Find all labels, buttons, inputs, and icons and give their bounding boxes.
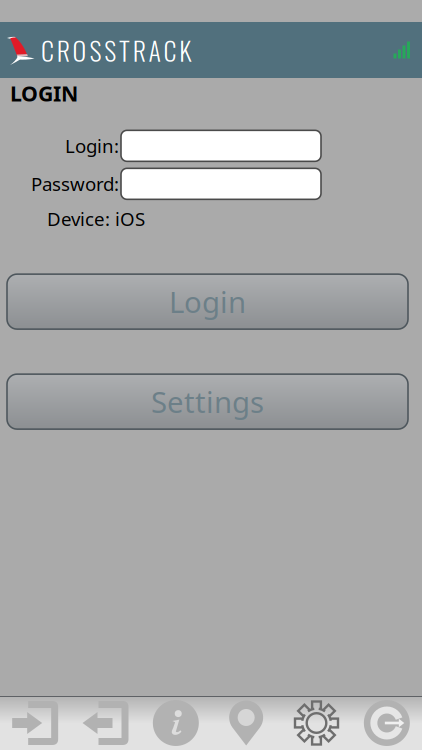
staticText: Device: iOS — [47, 206, 145, 231]
staticText: A — [149, 31, 161, 69]
staticText: C — [163, 31, 176, 69]
staticText: S — [104, 31, 116, 69]
staticText: Settings — [151, 382, 264, 421]
staticText: T — [119, 31, 130, 69]
staticText: S — [89, 31, 101, 69]
staticText: R — [57, 31, 70, 69]
button[interactable]: Location — [211, 696, 281, 750]
button[interactable]: Login — [7, 274, 408, 329]
button[interactable]: Settings — [7, 374, 408, 429]
button[interactable]: Sign out — [352, 696, 422, 750]
staticText: R — [133, 31, 146, 69]
button[interactable]: Settings — [281, 696, 352, 750]
staticText: Password: — [31, 171, 119, 196]
staticText: LOGIN — [10, 79, 78, 107]
button[interactable]: Info — [141, 696, 211, 750]
staticText: O — [73, 31, 87, 69]
staticText: C — [41, 31, 54, 69]
button[interactable]: Log out — [70, 696, 141, 750]
staticText: Login: — [65, 133, 119, 158]
button[interactable]: Log in — [0, 696, 70, 750]
staticText: K — [179, 31, 191, 69]
staticText: Login — [169, 282, 246, 321]
